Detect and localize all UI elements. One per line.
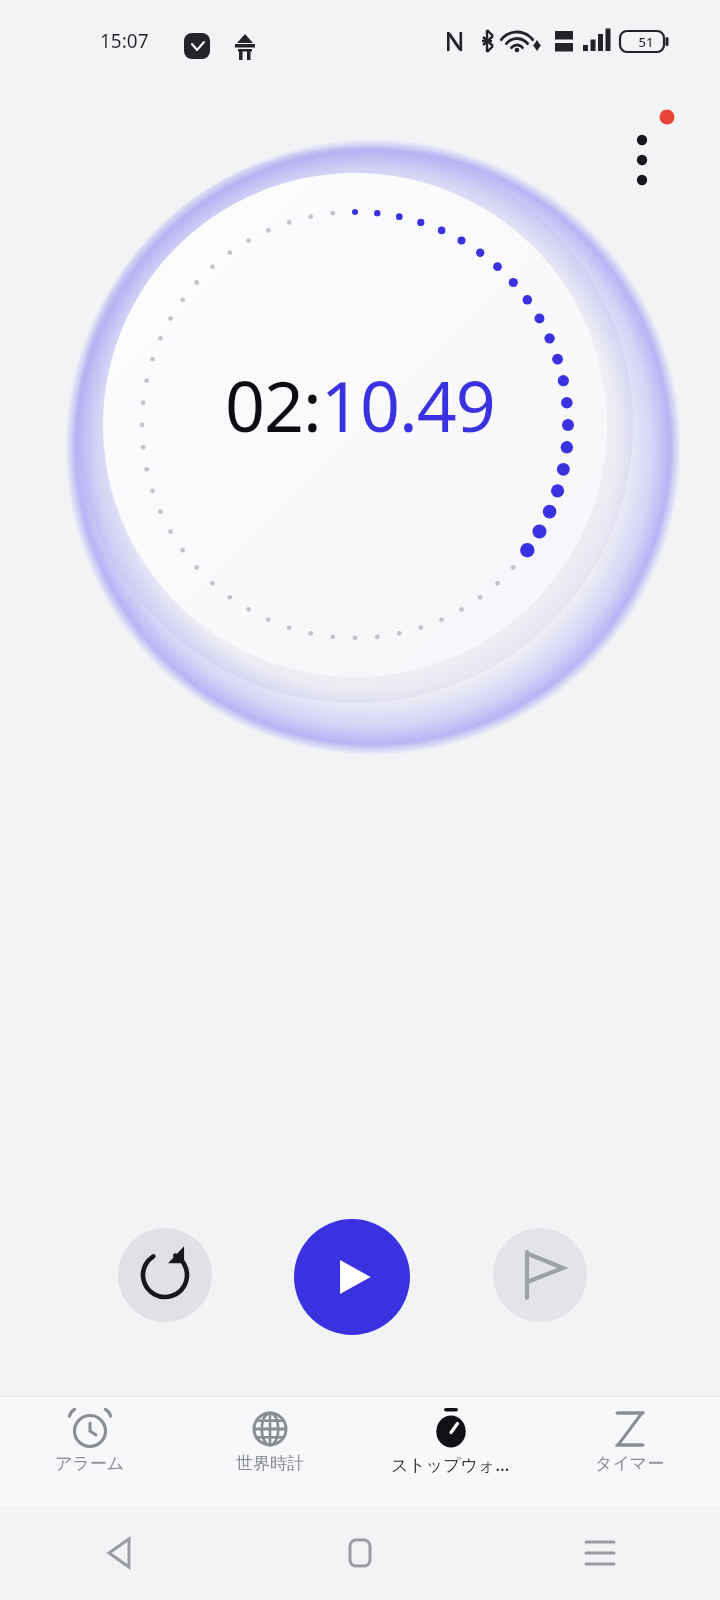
button[interactable]: タイマー	[540, 1397, 720, 1506]
button[interactable]: Recents	[480, 1506, 720, 1600]
button[interactable]: Lap	[493, 1228, 587, 1322]
button[interactable]: Reset	[118, 1228, 212, 1322]
button[interactable]: Back	[0, 1506, 240, 1600]
staticText: アラーム	[55, 1453, 125, 1474]
button[interactable]: 世界時計	[180, 1397, 360, 1506]
staticText: 15:07	[100, 28, 149, 54]
button[interactable]: Home	[240, 1506, 480, 1600]
staticText: 51	[624, 33, 668, 51]
button[interactable]: ストップウォ…	[360, 1397, 540, 1506]
button[interactable]: Start	[294, 1219, 410, 1335]
staticText: タイマー	[595, 1453, 665, 1474]
staticText: ストップウォ…	[391, 1453, 510, 1476]
button[interactable]: More options	[612, 100, 672, 160]
staticText: 02:10.49	[225, 357, 495, 452]
staticText: 世界時計	[236, 1453, 304, 1474]
button[interactable]: アラーム	[0, 1397, 180, 1506]
